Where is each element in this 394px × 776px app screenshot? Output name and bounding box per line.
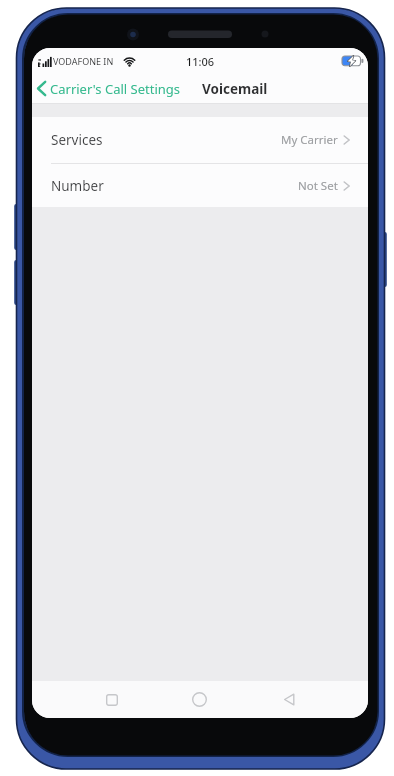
staticText: Voicemail	[202, 80, 268, 98]
staticText: Not Set	[298, 178, 338, 194]
button[interactable]: Carrier's Call Settings	[34, 74, 181, 103]
staticText: 11:06	[186, 54, 215, 69]
staticText: Services	[51, 131, 103, 149]
button[interactable]: Number	[32, 164, 368, 207]
staticText: Number	[51, 177, 104, 195]
staticText: Carrier's Call Settings	[50, 80, 181, 98]
staticText: My Carrier	[281, 132, 338, 148]
button[interactable]	[179, 681, 219, 718]
staticText: VODAFONE IN	[53, 55, 114, 67]
button[interactable]	[269, 681, 309, 718]
button[interactable]	[92, 681, 132, 718]
button[interactable]: Services	[32, 117, 368, 163]
